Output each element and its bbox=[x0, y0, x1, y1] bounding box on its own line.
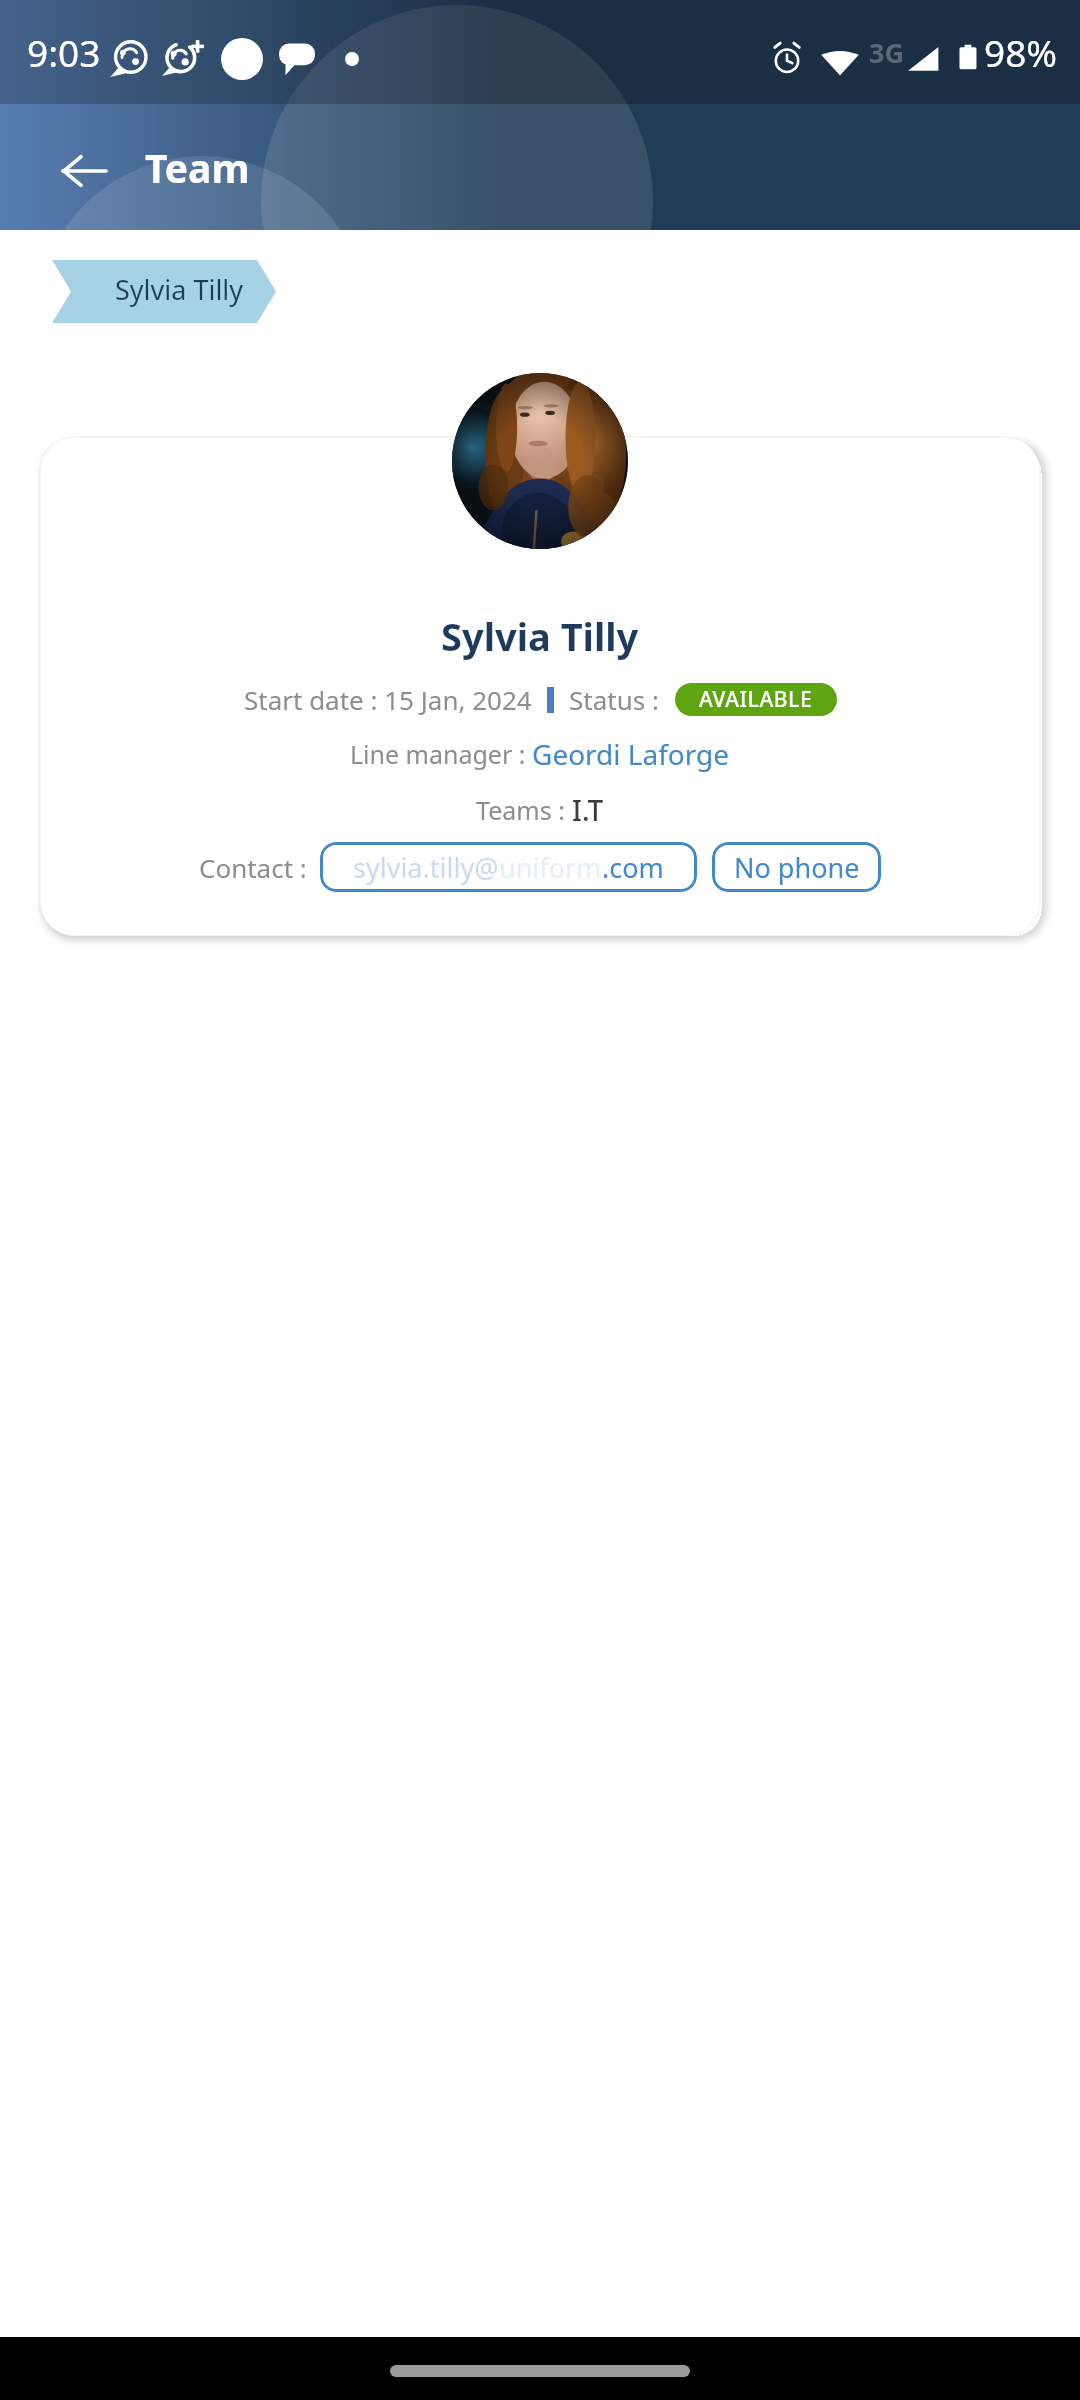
button[interactable]: Back bbox=[36, 124, 132, 220]
staticText: Sylvia Tilly bbox=[115, 271, 244, 308]
staticText: Line manager : bbox=[350, 737, 532, 771]
staticText: I.T bbox=[572, 791, 604, 829]
button[interactable]: AVAILABLE bbox=[675, 683, 837, 716]
staticText: Team bbox=[145, 141, 250, 194]
staticText: Start date : 15 Jan, 2024 bbox=[244, 682, 532, 717]
staticText: Contact : bbox=[199, 850, 314, 885]
staticText: AVAILABLE bbox=[699, 685, 813, 714]
button[interactable]: No phone bbox=[712, 842, 881, 892]
staticText: uniform bbox=[499, 849, 602, 886]
staticText: 98% bbox=[984, 27, 1058, 77]
button[interactable]: Sylvia Tilly bbox=[52, 260, 276, 323]
button[interactable]: Profile photo bbox=[452, 373, 628, 549]
button[interactable]: Email address bbox=[320, 842, 697, 892]
staticText: Teams : bbox=[476, 793, 572, 827]
staticText: 9:03 bbox=[27, 27, 101, 77]
staticText: .com bbox=[602, 849, 664, 886]
staticText: 3G bbox=[869, 34, 904, 71]
staticText: sylvia.tilly@ bbox=[353, 849, 499, 886]
staticText: No phone bbox=[734, 849, 860, 886]
staticText: Sylvia Tilly bbox=[441, 610, 639, 662]
button[interactable]: Sylvia Tilly bbox=[40, 437, 1040, 936]
button[interactable]: Geordi Laforge bbox=[532, 731, 730, 777]
staticText: Geordi Laforge bbox=[532, 735, 730, 773]
staticText: Status : bbox=[569, 682, 659, 717]
button[interactable]: Home bbox=[390, 2365, 690, 2377]
